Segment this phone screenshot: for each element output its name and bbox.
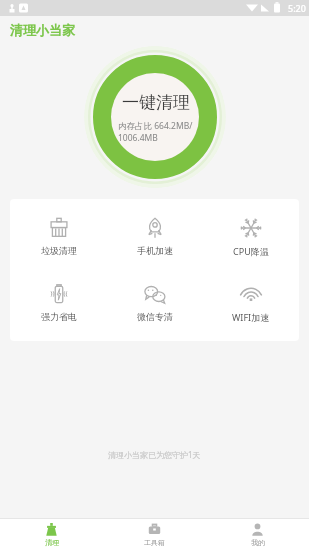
button[interactable]: WIFI加速 [203,277,299,329]
button[interactable]: 强力省电 [10,277,107,328]
staticText: 强力省电 [41,311,77,322]
button[interactable]: 手机加速 [107,211,203,262]
staticText: 清理小当家已为您守护1天 [108,449,201,460]
staticText: 清理小当家 [10,22,75,38]
staticText: CPU降温 [233,245,269,257]
button[interactable]: 微信专清 [107,277,203,328]
button[interactable]: CPU降温 [203,211,299,263]
staticText: 手机加速 [137,245,173,256]
button[interactable]: 垃圾清理 [10,211,107,262]
button[interactable]: 我的 [206,519,309,550]
button[interactable]: 清理 [0,519,103,550]
staticText: 5:20 [288,2,306,14]
button[interactable]: 工具箱 [103,519,206,550]
staticText: 微信专清 [137,311,173,322]
staticText: 垃圾清理 [41,245,77,256]
button[interactable]: 一键清理 [84,46,226,188]
staticText: 清理 [45,538,59,547]
staticText: 工具箱 [144,538,165,547]
staticText: 我的 [251,538,265,547]
staticText: 一键清理 [122,92,190,113]
staticText: 内存占比 664.2MB/ 1006.4MB [118,120,193,143]
staticText: WIFI加速 [232,311,270,323]
